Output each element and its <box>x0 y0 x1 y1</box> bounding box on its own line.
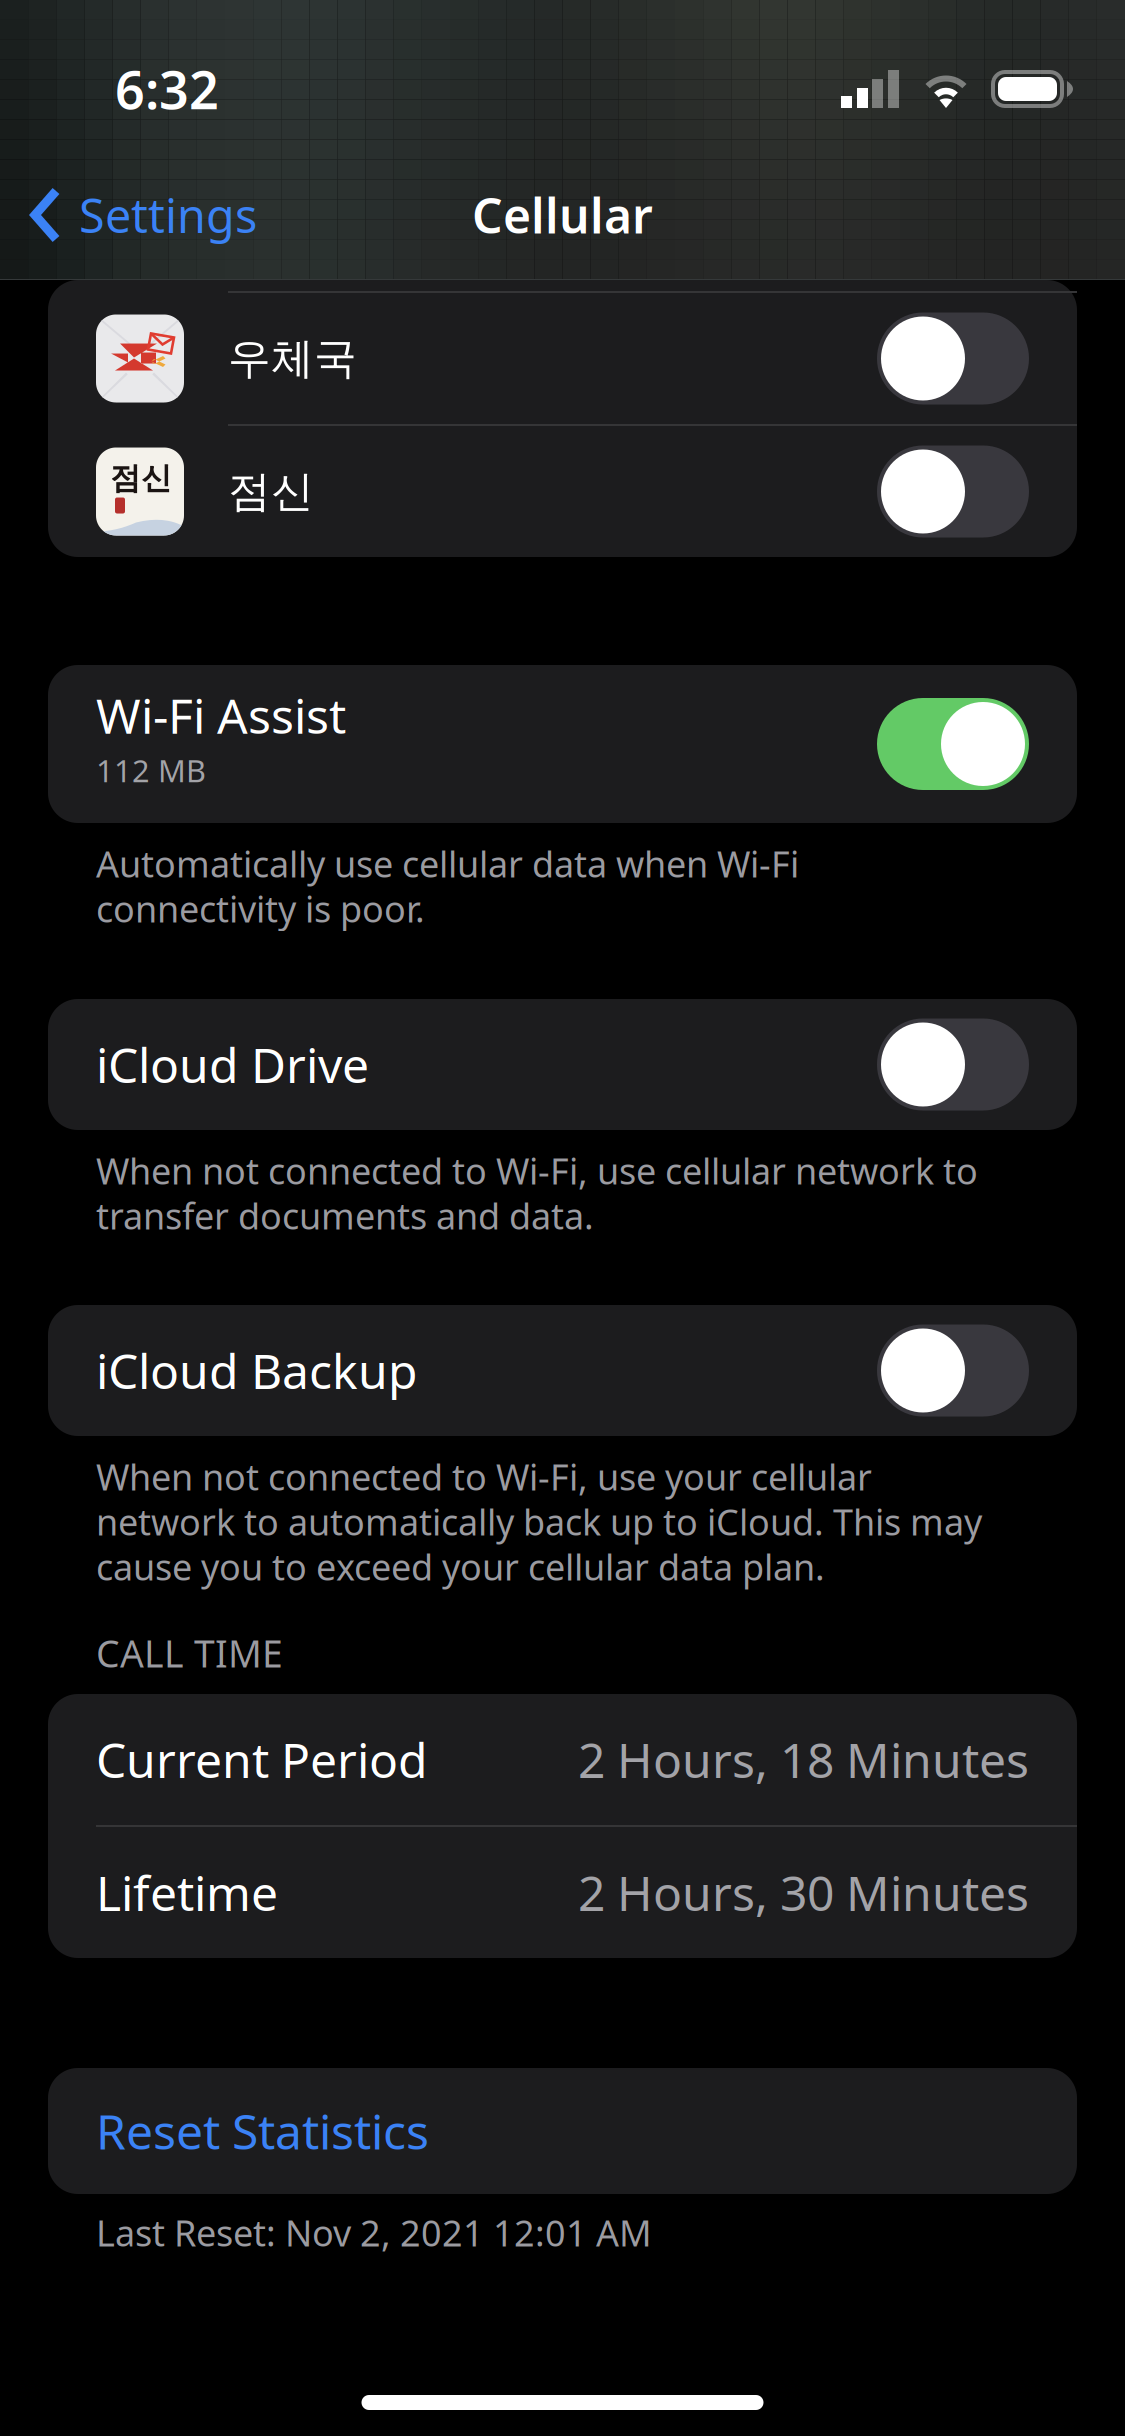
button[interactable]: Reset Statistics <box>0 2068 1125 2194</box>
staticText: 2 Hours, 18 Minutes <box>578 1728 1029 1791</box>
button[interactable]: iCloud Backup <box>48 1305 1077 1436</box>
button[interactable]: 우체국, off <box>877 312 1029 404</box>
staticText: network to automatically back up to iClo… <box>96 1498 982 1545</box>
staticText: 6:32 <box>115 54 219 124</box>
staticText: Last Reset: Nov 2, 2021 12:01 AM <box>96 2209 652 2256</box>
staticText: Cellular <box>472 183 653 247</box>
staticText: 점신 <box>228 465 314 518</box>
button[interactable]: Wi-Fi Assist, on <box>877 698 1029 790</box>
staticText: Current Period <box>96 1728 428 1791</box>
staticText: 우체국 <box>228 332 357 385</box>
staticText: connectivity is poor. <box>96 885 425 932</box>
staticText: iCloud Drive <box>96 1033 369 1096</box>
staticText: Lifetime <box>96 1861 278 1924</box>
staticText: Settings <box>79 184 257 246</box>
staticText: 점신 <box>110 459 172 497</box>
staticText: cause you to exceed your cellular data p… <box>96 1543 825 1590</box>
button[interactable]: 점신, off <box>877 445 1029 537</box>
staticText: transfer documents and data. <box>96 1192 594 1239</box>
button[interactable]: 점신 <box>48 426 1077 557</box>
staticText: 2 Hours, 30 Minutes <box>578 1861 1029 1924</box>
button[interactable]: iCloud Backup, off <box>877 1324 1029 1416</box>
staticText: 112 MB <box>96 750 206 791</box>
button[interactable]: 우체국 <box>48 293 1077 424</box>
staticText: Automatically use cellular data when Wi-… <box>96 840 799 887</box>
staticText: Reset Statistics <box>96 2099 429 2163</box>
button[interactable]: Wi-Fi Assist <box>48 665 1077 823</box>
staticText: CALL TIME <box>96 1628 283 1678</box>
staticText: When not connected to Wi-Fi, use your ce… <box>96 1453 872 1500</box>
staticText: When not connected to Wi-Fi, use cellula… <box>96 1147 978 1194</box>
staticText: Wi-Fi Assist <box>96 683 346 747</box>
button[interactable]: Settings <box>0 170 273 260</box>
staticText: iCloud Backup <box>96 1339 418 1402</box>
button[interactable]: iCloud Drive <box>48 999 1077 1130</box>
button[interactable]: iCloud Drive, off <box>877 1018 1029 1110</box>
